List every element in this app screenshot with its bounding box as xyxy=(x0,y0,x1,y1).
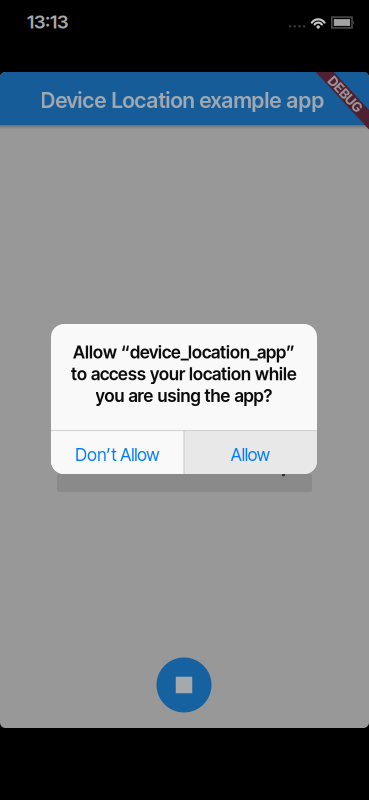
button[interactable]: Stop xyxy=(156,657,211,712)
button[interactable]: Allow xyxy=(184,431,317,474)
button[interactable]: Don’t Allow xyxy=(51,431,184,474)
staticText: you are using the app? xyxy=(95,385,272,406)
staticText: to access your location while xyxy=(71,364,297,384)
staticText: DEBUG xyxy=(323,86,367,102)
staticText: Allow xyxy=(231,444,270,465)
staticText: Allow “device_location_app” xyxy=(73,342,295,362)
staticText: 13:13 xyxy=(27,11,68,33)
staticText: Don’t Allow xyxy=(75,444,159,465)
staticText: Device Location example app xyxy=(40,88,324,113)
